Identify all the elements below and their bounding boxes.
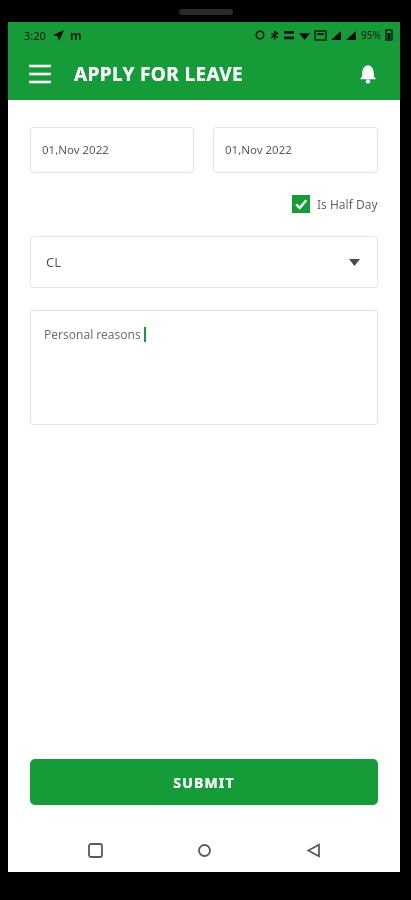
staticText: 95% bbox=[361, 28, 381, 42]
button[interactable]: SUBMIT bbox=[30, 759, 378, 805]
staticText: Is Half Day bbox=[317, 196, 378, 212]
staticText: 3:20 bbox=[24, 28, 46, 43]
staticText: APPLY FOR LEAVE bbox=[74, 61, 244, 87]
button[interactable]: Personal reasons bbox=[30, 310, 378, 425]
button[interactable]: CL bbox=[30, 236, 378, 288]
staticText: SUBMIT bbox=[173, 773, 235, 792]
button[interactable]: Open navigation menu bbox=[20, 54, 60, 94]
staticText: m bbox=[70, 27, 82, 43]
button[interactable]: Recent apps bbox=[73, 828, 117, 872]
button[interactable]: Back bbox=[291, 828, 335, 872]
button[interactable]: Home bbox=[182, 828, 226, 872]
button[interactable]: 01,Nov 2022 bbox=[30, 127, 194, 173]
staticText: 01,Nov 2022 bbox=[225, 142, 292, 158]
staticText: CL bbox=[46, 253, 62, 271]
button[interactable]: 01,Nov 2022 bbox=[213, 127, 378, 173]
button[interactable]: Notifications bbox=[348, 54, 388, 94]
staticText: 01,Nov 2022 bbox=[42, 142, 109, 158]
staticText: Personal reasons bbox=[44, 326, 141, 342]
button[interactable]: Is Half Day bbox=[292, 195, 378, 213]
